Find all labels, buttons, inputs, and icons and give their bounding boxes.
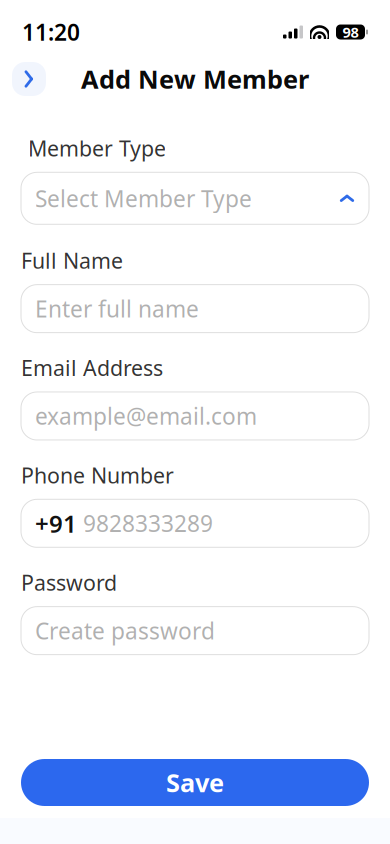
button[interactable]: Enter full name xyxy=(21,285,369,333)
staticText: 98 xyxy=(342,22,358,42)
staticText: Email Address xyxy=(21,354,163,382)
staticText: Phone Number xyxy=(21,461,174,489)
staticText: 9828333289 xyxy=(83,508,213,538)
button[interactable]: example@email.com xyxy=(21,392,369,440)
button[interactable]: +91 xyxy=(21,499,369,547)
staticText: Full Name xyxy=(21,246,123,275)
staticText: 11:20 xyxy=(22,17,80,47)
staticText: example@email.com xyxy=(35,401,257,431)
button[interactable]: Select Member Type xyxy=(21,172,369,224)
button[interactable]: Save xyxy=(21,759,369,806)
staticText: Member Type xyxy=(28,134,166,162)
staticText: Create password xyxy=(35,616,215,646)
staticText: +91 xyxy=(35,507,77,539)
staticText: Enter full name xyxy=(35,294,199,324)
staticText: Password xyxy=(21,568,117,597)
staticText: Add New Member xyxy=(81,62,309,96)
staticText: Save xyxy=(166,766,224,799)
staticText: Select Member Type xyxy=(35,183,252,213)
button[interactable]: Create password xyxy=(21,607,369,655)
button[interactable]: Back xyxy=(12,62,46,96)
